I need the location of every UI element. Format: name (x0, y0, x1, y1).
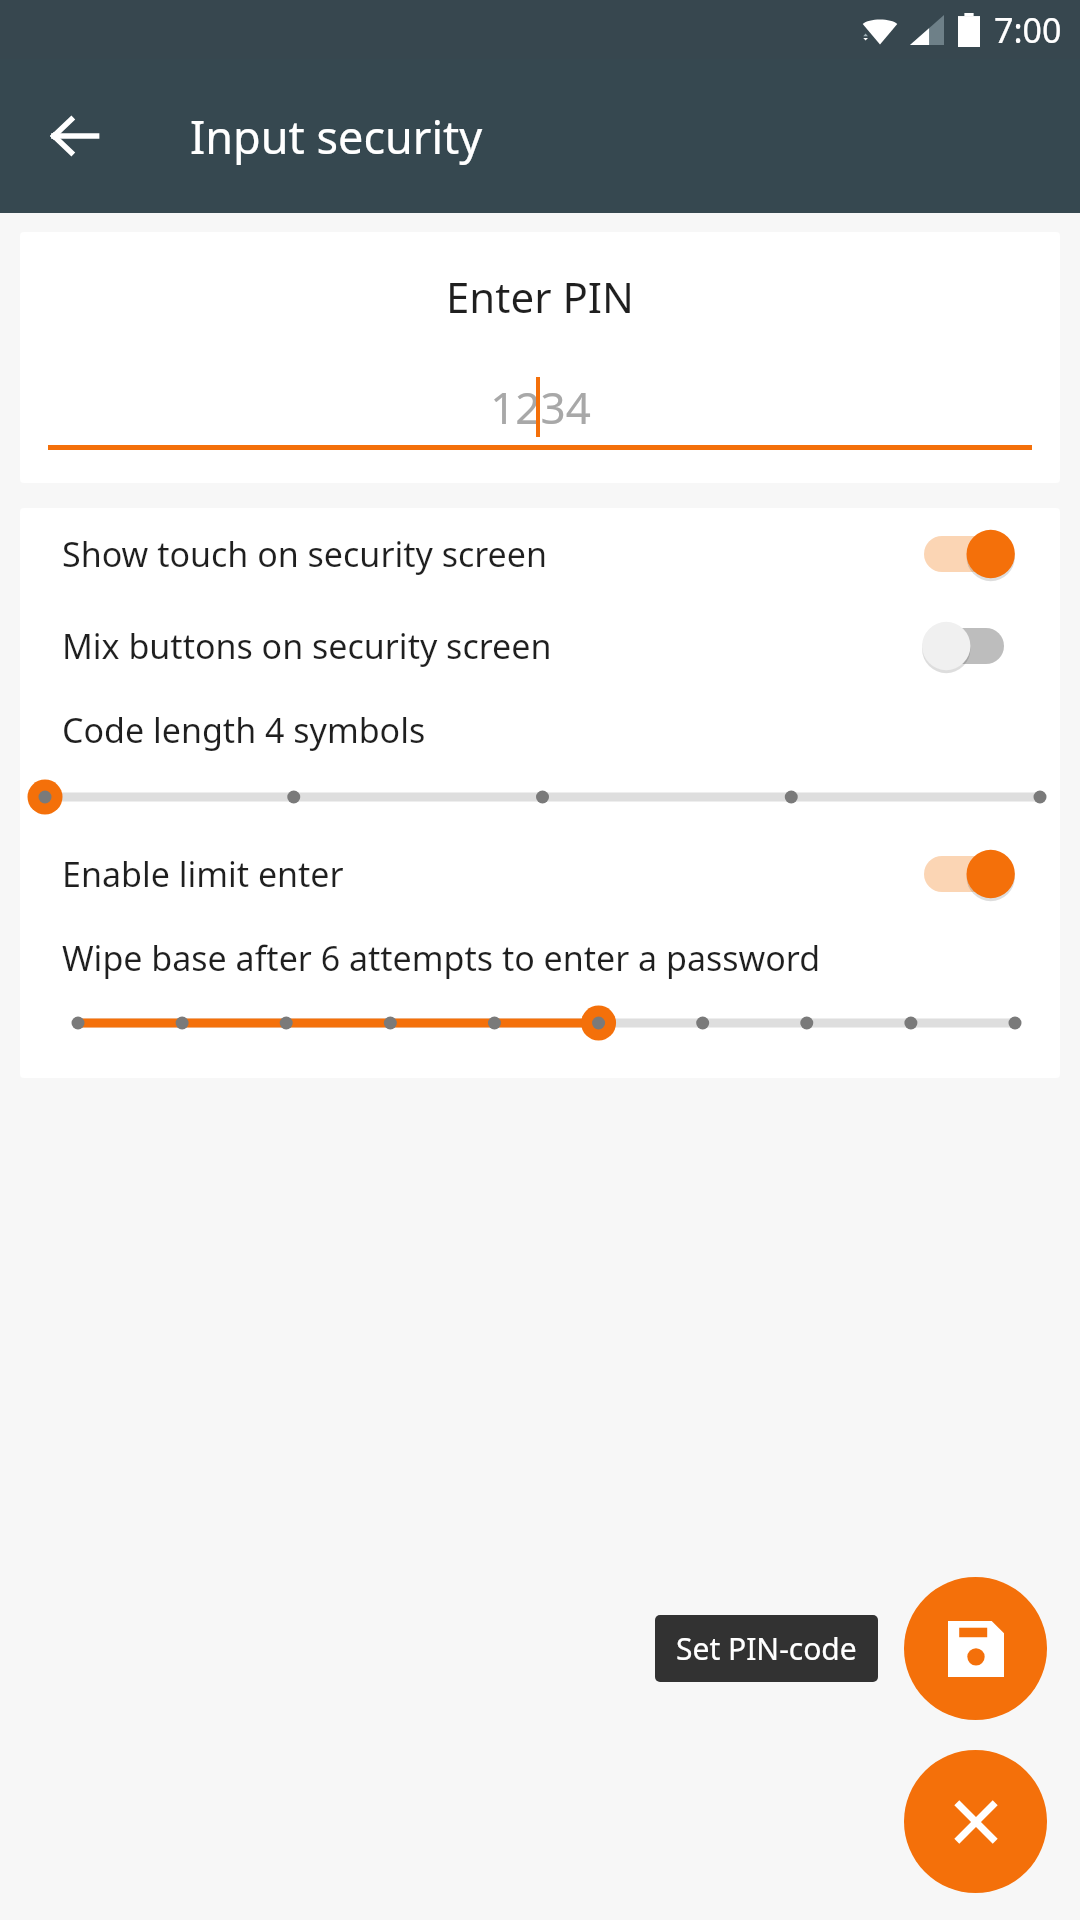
button[interactable]: 1234 (20, 377, 1060, 437)
staticText: 1234 (490, 377, 591, 437)
staticText: Enter PIN (446, 268, 634, 325)
staticText: Wipe base after 6 attempts to enter a pa… (62, 935, 821, 981)
button[interactable]: Attempts (20, 994, 1060, 1052)
staticText: Input security (190, 106, 483, 167)
button[interactable]: Back (34, 95, 116, 177)
button[interactable]: Save PIN-code (904, 1577, 1047, 1720)
button[interactable]: Code length (20, 768, 1060, 826)
staticText: 7:00 (994, 7, 1062, 53)
button[interactable]: Show touch on security screen (20, 508, 1060, 600)
button[interactable]: Mix buttons on security screen (20, 600, 1060, 692)
staticText: Enable limit enter (62, 851, 924, 897)
staticText: Set PIN-code (676, 1628, 857, 1669)
staticText: Code length 4 symbols (62, 707, 426, 753)
button[interactable]: Enable limit enter (20, 826, 1060, 922)
staticText: Show touch on security screen (62, 531, 924, 577)
button[interactable]: Close (904, 1750, 1047, 1893)
button[interactable]: Set PIN-code (655, 1615, 878, 1682)
staticText: Mix buttons on security screen (62, 623, 924, 669)
